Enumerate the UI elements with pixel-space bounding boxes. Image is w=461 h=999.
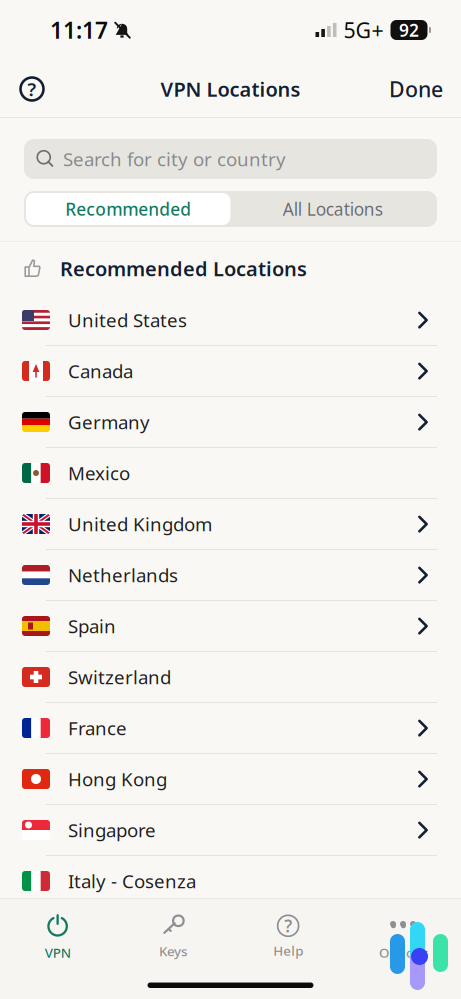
- staticText: Recommended: [65, 197, 191, 220]
- staticText: Mexico: [68, 461, 130, 485]
- staticText: 11:17: [50, 15, 108, 45]
- staticText: Search for city or country: [63, 147, 286, 171]
- staticText: Done: [389, 75, 443, 103]
- button[interactable]: United States: [0, 295, 461, 346]
- staticText: VPN Locations: [160, 76, 300, 102]
- staticText: United Kingdom: [68, 512, 212, 536]
- staticText: Netherlands: [68, 563, 178, 587]
- button[interactable]: Help: [10, 67, 54, 111]
- staticText: Germany: [68, 410, 150, 434]
- button[interactable]: Hong Kong: [0, 754, 461, 805]
- staticText: Help: [273, 942, 303, 959]
- staticText: France: [68, 716, 127, 740]
- button[interactable]: Done: [389, 67, 443, 111]
- button[interactable]: Spain: [0, 601, 461, 652]
- staticText: Options: [379, 944, 428, 961]
- staticText: Keys: [159, 942, 187, 960]
- staticText: ?: [27, 77, 36, 101]
- button[interactable]: Mexico: [0, 448, 461, 499]
- button[interactable]: United Kingdom: [0, 499, 461, 550]
- button[interactable]: Options: [346, 899, 461, 961]
- staticText: Recommended Locations: [60, 255, 307, 282]
- button[interactable]: France: [0, 703, 461, 754]
- button[interactable]: Germany: [0, 397, 461, 448]
- button[interactable]: Netherlands: [0, 550, 461, 601]
- staticText: Spain: [68, 614, 116, 638]
- button[interactable]: Singapore: [0, 805, 461, 856]
- staticText: United States: [68, 308, 187, 332]
- staticText: Hong Kong: [68, 767, 167, 791]
- button[interactable]: Italy - Cosenza: [0, 856, 461, 906]
- button[interactable]: VPN: [0, 899, 115, 961]
- staticText: Canada: [68, 359, 133, 383]
- button[interactable]: ?: [230, 901, 346, 959]
- staticText: ?: [284, 914, 292, 937]
- staticText: All Locations: [283, 197, 383, 220]
- staticText: Singapore: [68, 818, 156, 842]
- staticText: 92: [399, 18, 419, 41]
- button[interactable]: Recommended: [26, 193, 230, 225]
- button[interactable]: Keys: [115, 900, 230, 960]
- staticText: Italy - Cosenza: [68, 869, 196, 893]
- button[interactable]: Switzerland: [0, 652, 461, 703]
- staticText: 5G+: [343, 16, 383, 44]
- button[interactable]: Canada: [0, 346, 461, 397]
- staticText: Switzerland: [68, 665, 171, 689]
- button[interactable]: All Locations: [230, 193, 435, 225]
- button[interactable]: Search for city or country: [24, 139, 437, 179]
- staticText: VPN: [45, 944, 71, 961]
